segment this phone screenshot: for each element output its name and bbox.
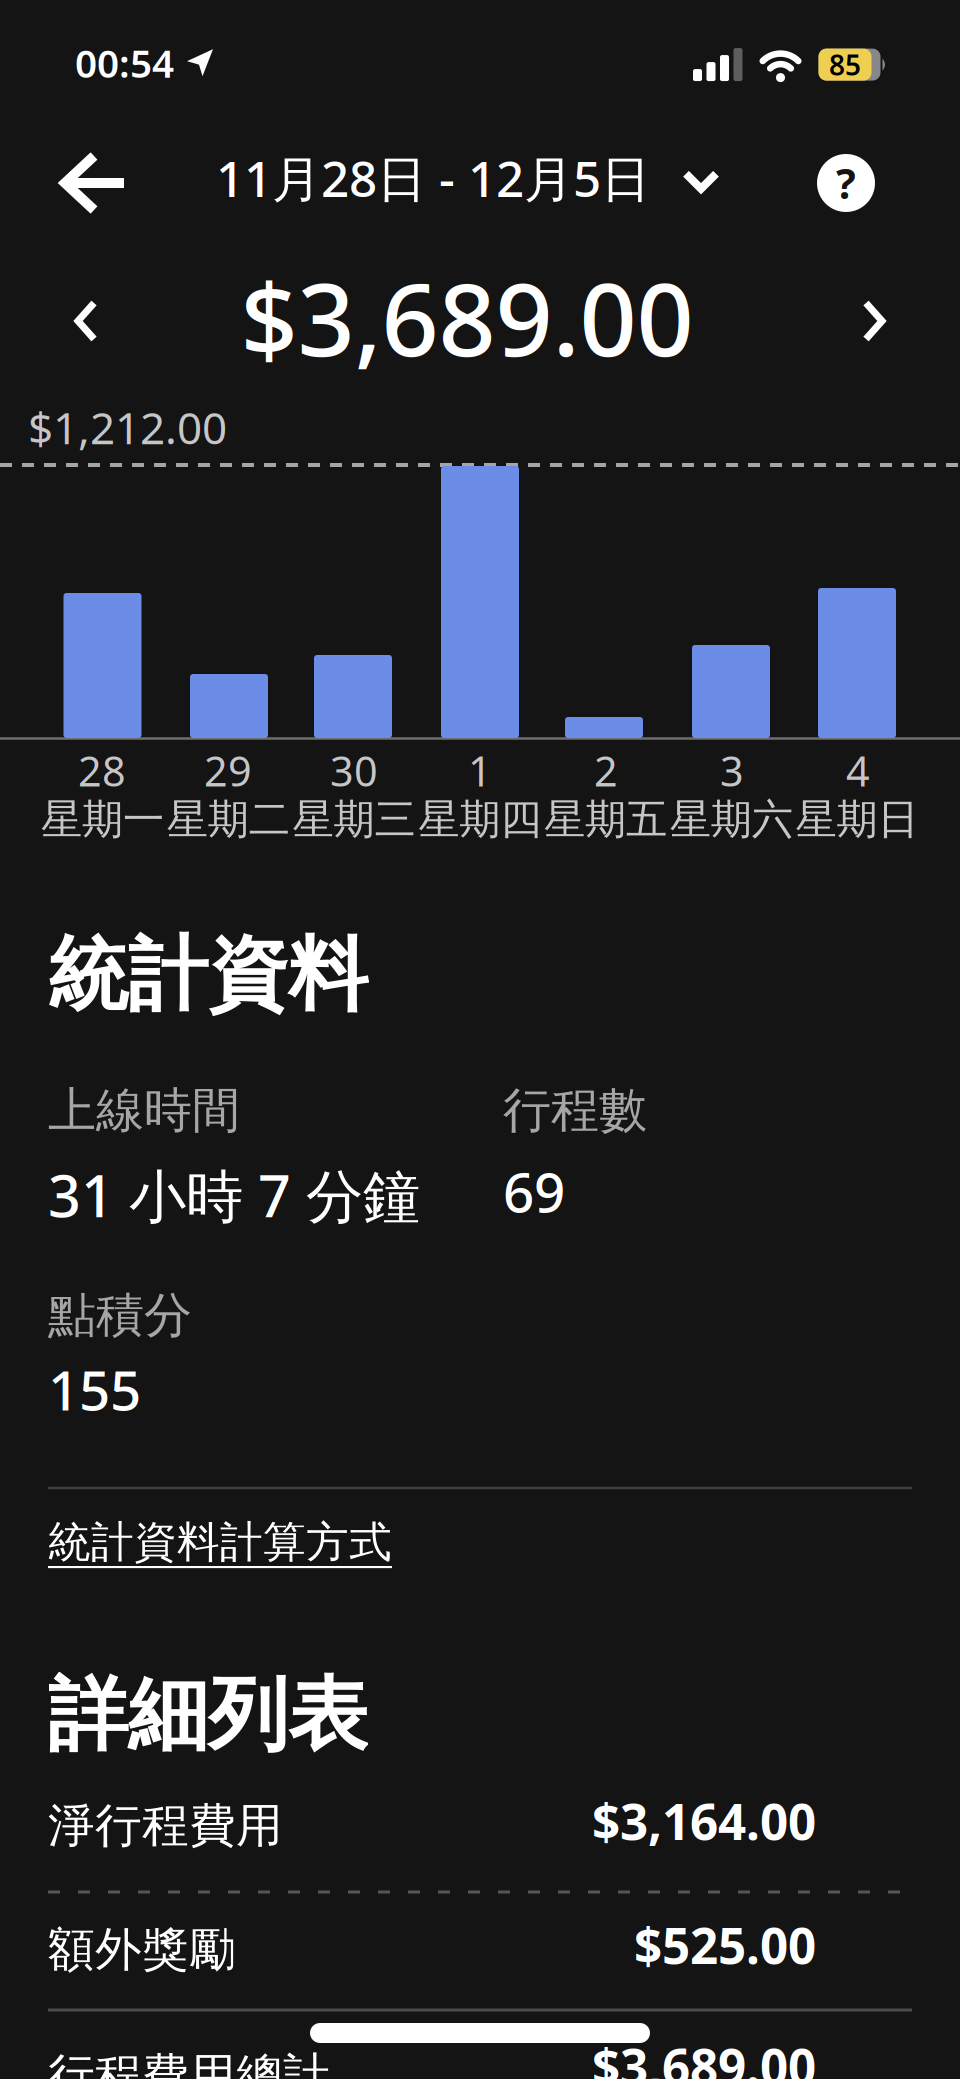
staticText: 星期四: [418, 794, 541, 845]
staticText: 行程費用總計: [48, 2047, 330, 2079]
staticText: 上線時間: [48, 1081, 240, 1140]
button[interactable]: 返回: [60, 153, 128, 213]
staticText: 詳細列表: [48, 1666, 368, 1764]
staticText: 星期二: [167, 794, 290, 845]
staticText: 星期六: [670, 794, 793, 845]
staticText: $3,689.00: [240, 251, 693, 384]
staticText: 星期日: [795, 794, 918, 845]
staticText: $3,164.00: [592, 1788, 816, 1853]
button[interactable]: 說明: [817, 154, 875, 212]
staticText: 統計資料計算方式: [48, 1516, 392, 1568]
staticText: 星期五: [544, 794, 667, 845]
staticText: $525.00: [634, 1912, 816, 1977]
staticText: 28: [78, 743, 126, 798]
staticText: 點積分: [48, 1286, 192, 1345]
staticText: 3: [720, 743, 744, 798]
button[interactable]: 下一週: [850, 288, 898, 354]
staticText: 155: [48, 1353, 141, 1426]
staticText: 4: [846, 743, 870, 798]
staticText: 星期三: [292, 794, 415, 845]
staticText: 淨行程費用: [48, 1797, 283, 1854]
staticText: 行程數: [503, 1081, 647, 1140]
staticText: 30: [330, 743, 378, 798]
button[interactable]: 上一週: [62, 288, 110, 354]
staticText: 2: [594, 743, 618, 798]
staticText: 85: [829, 46, 861, 83]
staticText: $3,689.00: [592, 2033, 816, 2079]
staticText: $1,212.00: [28, 398, 227, 456]
staticText: 星期一: [41, 794, 164, 845]
button[interactable]: 11月28日 - 12月5日: [216, 145, 718, 210]
staticText: 統計資料: [48, 926, 368, 1024]
staticText: 29: [204, 743, 252, 798]
staticText: 1: [468, 743, 492, 798]
staticText: 00:54: [75, 37, 174, 88]
staticText: 69: [503, 1155, 565, 1228]
staticText: 額外獎勵: [48, 1921, 236, 1978]
button[interactable]: 統計資料計算方式: [48, 1516, 392, 1568]
staticText: 11月28日 - 12月5日: [216, 145, 650, 210]
staticText: ?: [836, 156, 856, 210]
staticText: 31 小時 7 分鐘: [48, 1157, 420, 1233]
